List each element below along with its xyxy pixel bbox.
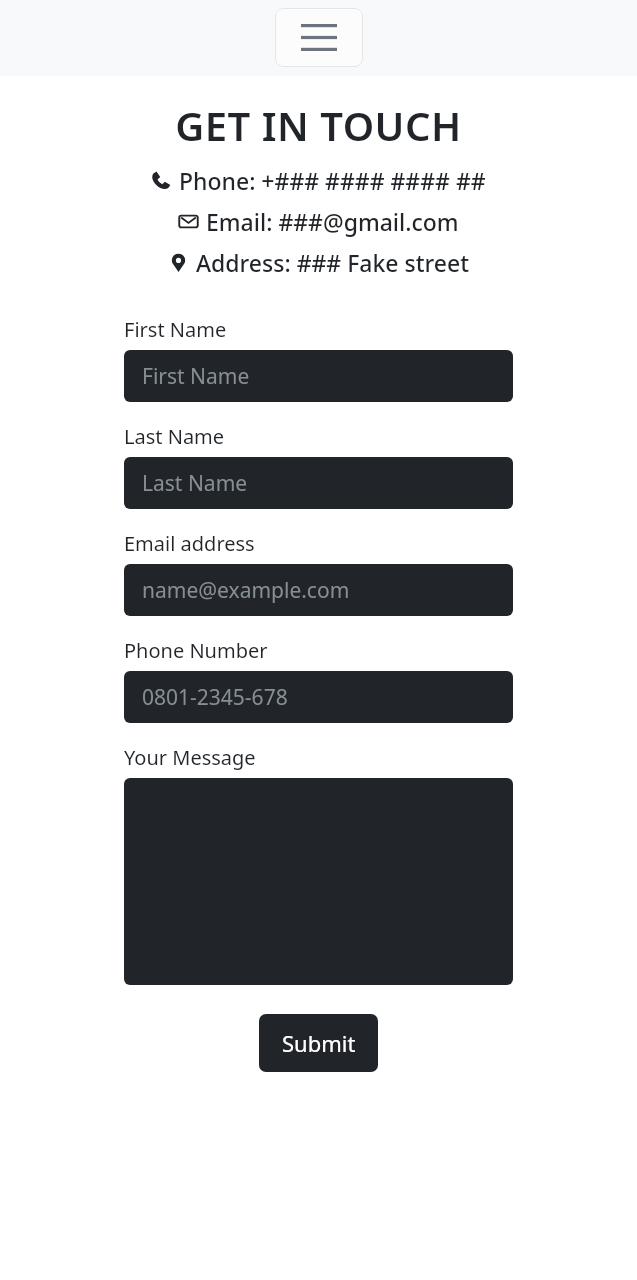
- staticText: Email: ###@gmail.com: [206, 206, 459, 237]
- staticText: Last Name: [124, 423, 225, 450]
- staticText: Submit: [282, 1028, 356, 1058]
- staticText: Phone Number: [124, 637, 268, 664]
- staticText: Last Name: [142, 469, 248, 498]
- staticText: Your Message: [124, 744, 256, 771]
- button[interactable]: name@example.com: [124, 564, 513, 616]
- button[interactable]: 0801-2345-678: [124, 671, 513, 723]
- staticText: First Name: [142, 362, 250, 391]
- button[interactable]: [124, 778, 513, 985]
- button[interactable]: Open menu: [275, 8, 363, 67]
- staticText: name@example.com: [142, 576, 350, 605]
- staticText: First Name: [124, 316, 227, 343]
- staticText: Email address: [124, 530, 255, 557]
- staticText: Address: ### Fake street: [196, 247, 470, 278]
- button[interactable]: Submit: [259, 1014, 378, 1072]
- staticText: Phone: +### #### #### ##: [179, 165, 486, 196]
- button[interactable]: Last Name: [124, 457, 513, 509]
- staticText: 0801-2345-678: [142, 683, 288, 712]
- button[interactable]: First Name: [124, 350, 513, 402]
- staticText: GET IN TOUCH: [0, 98, 637, 152]
